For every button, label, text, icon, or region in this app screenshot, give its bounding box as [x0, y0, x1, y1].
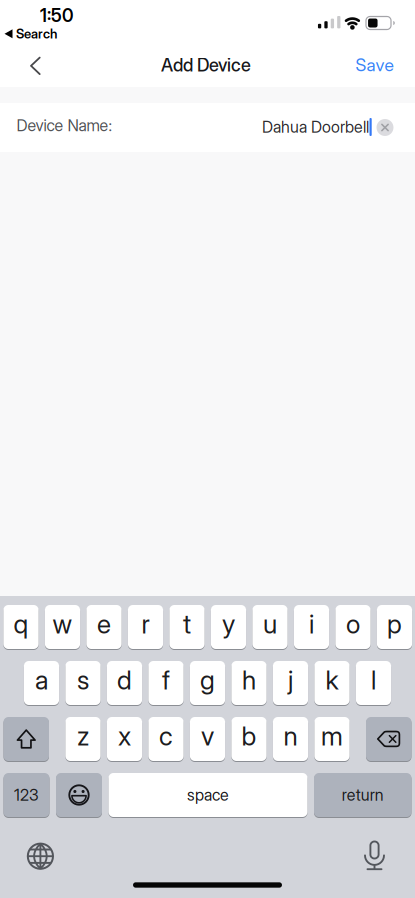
button[interactable]: Delete	[366, 716, 411, 762]
button[interactable]: return	[314, 772, 411, 818]
button[interactable]: e	[86, 604, 122, 650]
button[interactable]: u	[252, 604, 288, 650]
button[interactable]: Dictation	[364, 842, 384, 870]
staticText: p	[387, 608, 402, 640]
button[interactable]: Back	[29, 57, 41, 75]
staticText: 123	[14, 785, 39, 805]
staticText: k	[325, 664, 338, 696]
staticText: v	[201, 720, 214, 752]
staticText: h	[242, 664, 256, 696]
staticText: b	[241, 720, 256, 752]
staticText: Dahua Doorbell	[262, 117, 369, 137]
staticText: return	[342, 785, 384, 805]
button[interactable]: v	[190, 716, 225, 762]
button[interactable]: r	[128, 604, 163, 650]
staticText: Save	[355, 54, 393, 76]
button[interactable]: h	[231, 660, 267, 706]
staticText: d	[117, 664, 132, 696]
button[interactable]: y	[211, 604, 246, 650]
staticText: t	[183, 608, 191, 640]
staticText: f	[162, 664, 170, 696]
button[interactable]: Search	[4, 26, 57, 42]
button[interactable]: f	[148, 660, 184, 706]
staticText: u	[263, 608, 277, 640]
button[interactable]: d	[107, 660, 142, 706]
staticText: n	[283, 720, 297, 752]
button[interactable]: Emoji	[56, 772, 102, 818]
staticText: o	[346, 608, 360, 640]
button[interactable]: Shift	[3, 716, 49, 762]
staticText: j	[288, 664, 293, 696]
button[interactable]: g	[190, 660, 225, 706]
button[interactable]: t	[169, 604, 205, 650]
staticText: i	[309, 608, 314, 640]
staticText: g	[200, 664, 215, 696]
button[interactable]: a	[24, 660, 59, 706]
staticText: z	[77, 720, 89, 752]
staticText: e	[97, 608, 111, 640]
staticText: Search	[16, 26, 57, 42]
staticText: w	[52, 608, 72, 640]
staticText: y	[222, 608, 235, 640]
button[interactable]: j	[273, 660, 308, 706]
staticText: q	[13, 608, 28, 640]
button[interactable]: x	[107, 716, 142, 762]
button[interactable]: z	[65, 716, 101, 762]
button[interactable]: c	[148, 716, 184, 762]
button[interactable]: Save	[355, 54, 393, 76]
button[interactable]: o	[335, 604, 371, 650]
staticText: s	[77, 664, 89, 696]
staticText: Device Name:	[16, 116, 112, 135]
button[interactable]: s	[65, 660, 101, 706]
staticText: space	[187, 785, 229, 805]
button[interactable]: 123	[3, 772, 49, 818]
button[interactable]: space	[108, 772, 307, 818]
button[interactable]: p	[377, 604, 412, 650]
staticText: m	[321, 720, 343, 752]
staticText: c	[159, 720, 173, 752]
button[interactable]: Clear text	[376, 119, 393, 136]
staticText: x	[118, 720, 131, 752]
button[interactable]: b	[231, 716, 267, 762]
staticText: r	[141, 608, 149, 640]
staticText: Add Device	[161, 54, 251, 76]
staticText: 1:50	[40, 5, 73, 26]
button[interactable]: n	[273, 716, 308, 762]
button[interactable]: Next keyboard	[27, 843, 54, 870]
button[interactable]: q	[3, 604, 39, 650]
button[interactable]: i	[294, 604, 329, 650]
staticText: a	[35, 664, 48, 696]
button[interactable]: l	[356, 660, 391, 706]
button[interactable]: k	[314, 660, 350, 706]
staticText: l	[371, 664, 376, 696]
button[interactable]: w	[45, 604, 80, 650]
button[interactable]: m	[314, 716, 350, 762]
